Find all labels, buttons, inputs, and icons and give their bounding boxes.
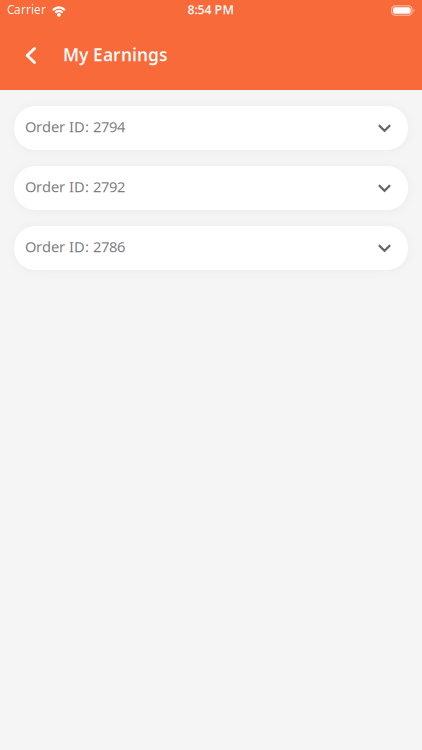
button[interactable]: Order ID: 2786 [14, 226, 408, 270]
staticText: Order ID: 2792 [25, 177, 125, 196]
staticText: Order ID: 2786 [25, 237, 125, 256]
button[interactable]: Order ID: 2792 [14, 166, 408, 210]
staticText: 8:54 PM [187, 1, 234, 18]
staticText: Order ID: 2794 [25, 117, 125, 136]
button[interactable] [0, 48, 50, 63]
button[interactable]: Order ID: 2794 [14, 106, 408, 150]
staticText: Carrier [7, 1, 46, 17]
staticText: My Earnings [63, 43, 168, 66]
